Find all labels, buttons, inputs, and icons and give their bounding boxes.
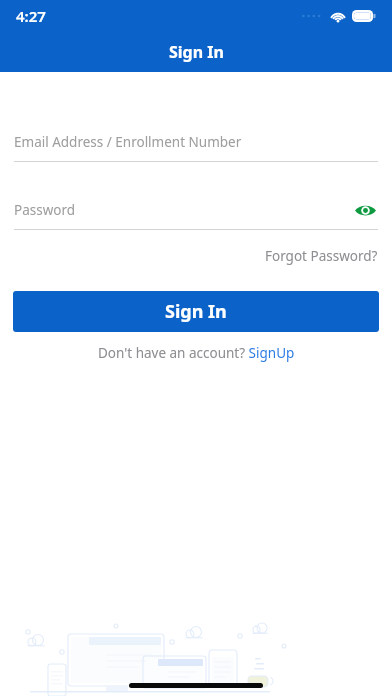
staticText: Password [14,201,76,219]
button[interactable]: Sign In [13,291,379,332]
button[interactable]: Forgot Password? [265,243,378,269]
button[interactable]: Email Address / Enrollment Number [14,127,378,157]
button[interactable]: Don't have an account? SignUp [98,341,295,365]
staticText: Sign In [169,41,224,63]
button[interactable]: Password [14,195,378,225]
staticText: Don't have an account? SignUp [98,344,295,362]
staticText: Email Address / Enrollment Number [14,133,242,151]
staticText: Sign In [165,299,227,324]
button[interactable]: Show password [352,197,378,223]
staticText: 4:27 [16,6,46,26]
staticText: Forgot Password? [265,247,378,265]
